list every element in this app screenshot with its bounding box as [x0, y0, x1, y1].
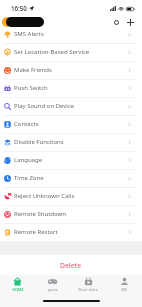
button[interactable]: Language [0, 151, 137, 169]
staticText: ME [121, 287, 127, 292]
button[interactable]: Remote Restart [0, 223, 137, 241]
staticText: game [48, 287, 58, 292]
staticText: Remote Restart [14, 228, 127, 236]
button[interactable]: Disable Functions [0, 133, 137, 151]
button[interactable]: Time Zone [0, 169, 137, 187]
button[interactable]: Delete [0, 255, 142, 275]
staticText: Reject Unknown Calls [14, 192, 127, 200]
button[interactable]: Play Sound on Device [0, 97, 137, 115]
staticText: Language [14, 156, 127, 164]
button[interactable]: game [35, 277, 70, 297]
staticText: HOME [12, 287, 24, 292]
staticText: Disable Functions [14, 138, 127, 146]
button[interactable]: HOME [0, 277, 35, 297]
button[interactable]: Scan [111, 17, 122, 27]
button[interactable]: ME [106, 277, 142, 297]
staticText: Play Sound on Device [14, 102, 127, 110]
staticText: Short video [78, 287, 98, 292]
staticText: Remote Shutdown [14, 210, 127, 218]
button[interactable]: Make Friends [0, 61, 137, 79]
staticText: Set Location-Based Service [14, 48, 127, 56]
staticText: SMS Alerts [14, 30, 127, 38]
button[interactable]: Remote Shutdown [0, 205, 137, 223]
staticText: Delete [60, 261, 82, 270]
button[interactable]: Set Location-Based Service [0, 43, 137, 61]
button[interactable]: Push Switch [0, 79, 137, 97]
button[interactable]: SMS Alerts [0, 25, 137, 43]
button[interactable]: Contacts [0, 115, 137, 133]
staticText: Time Zone [14, 174, 127, 182]
button[interactable]: Reject Unknown Calls [0, 187, 137, 205]
staticText: Make Friends [14, 66, 127, 74]
button[interactable]: Short video [70, 277, 106, 297]
staticText: Push Switch [14, 84, 127, 92]
staticText: 16:50 [11, 4, 27, 12]
staticText: Contacts [14, 120, 127, 128]
button[interactable]: Add [125, 17, 136, 27]
